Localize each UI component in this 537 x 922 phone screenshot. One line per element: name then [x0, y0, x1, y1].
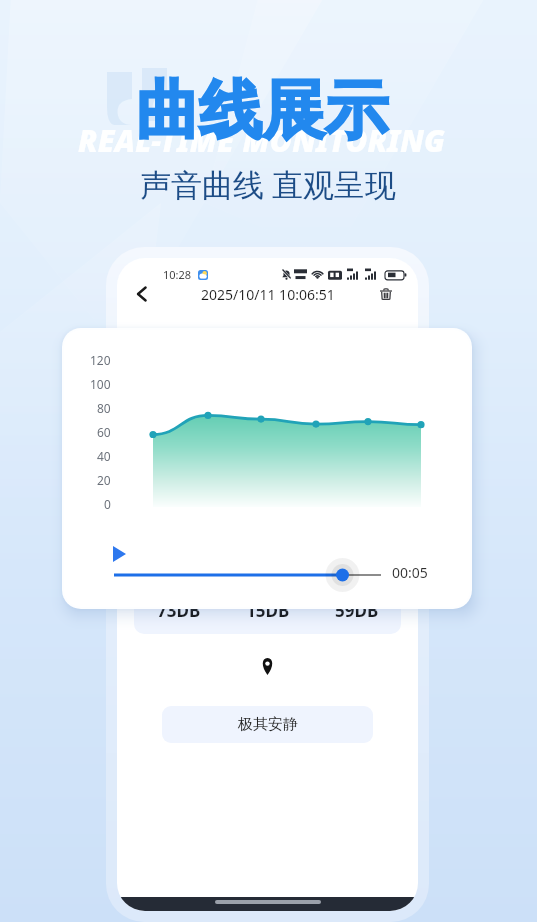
button[interactable]: Back — [126, 278, 158, 310]
button[interactable]: Delete — [373, 281, 399, 307]
button[interactable]: 极其安静 — [162, 706, 373, 743]
button[interactable]: Location — [261, 658, 274, 675]
staticText: 15DB — [246, 599, 290, 622]
button[interactable]: Play — [109, 543, 130, 564]
staticText: 曲线展示 — [136, 71, 388, 150]
staticText: 0 — [104, 496, 111, 512]
staticText: 60 — [97, 424, 111, 440]
staticText: 声音曲线 直观呈现 — [140, 163, 397, 205]
staticText: 100 — [90, 376, 111, 392]
staticText: 10:28 — [163, 267, 192, 282]
staticText: 120 — [90, 352, 111, 368]
staticText: REAL-TIME MONITORING — [78, 120, 446, 161]
staticText: 80 — [97, 400, 111, 416]
staticText: 00:05 — [392, 563, 428, 582]
staticText: 59DB — [335, 599, 379, 622]
staticText: 40 — [97, 448, 111, 464]
staticText: 73DB — [157, 599, 201, 622]
staticText: 极其安静 — [238, 715, 298, 734]
staticText: 2025/10/11 10:06:51 — [201, 285, 335, 304]
staticText: 20 — [97, 472, 111, 488]
